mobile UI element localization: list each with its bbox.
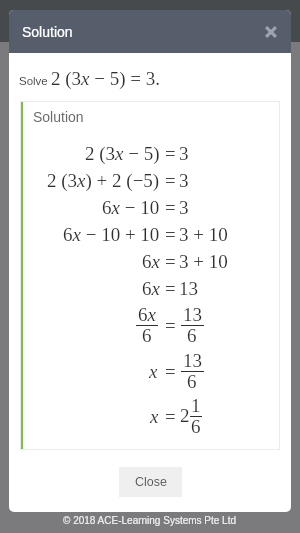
staticText: 3 [179, 197, 189, 218]
staticText: = [165, 315, 176, 336]
staticText: = [165, 197, 176, 218]
staticText: 6 [142, 325, 152, 346]
staticText: 1 [191, 395, 201, 416]
staticText: Solution [33, 109, 84, 125]
staticText: 2 (3x) + 2 (−5) [47, 170, 160, 191]
staticText: 3 + 10 [179, 251, 228, 272]
staticText: = [165, 170, 176, 191]
staticText: 2 [180, 405, 190, 426]
staticText: 13 [183, 350, 202, 371]
staticText: 6 [187, 371, 197, 392]
staticText: Solution [22, 24, 73, 40]
button[interactable]: Close [260, 21, 282, 43]
staticText: x [150, 406, 159, 427]
staticText: 6x − 10 + 10 [63, 224, 160, 245]
staticText: 3 [179, 143, 189, 164]
staticText: = [165, 278, 176, 299]
staticText: Solve 2 (3x − 5) = 3. [19, 68, 160, 89]
staticText: x [149, 361, 158, 382]
staticText: = [165, 361, 176, 382]
button[interactable]: Close [119, 467, 182, 497]
staticText: Close [135, 475, 167, 489]
staticText: 13 [183, 304, 202, 325]
staticText: 6x [142, 278, 160, 299]
staticText: 3 + 10 [179, 224, 228, 245]
staticText: 3 [179, 170, 189, 191]
staticText: = [165, 406, 176, 427]
staticText: 6x [142, 251, 160, 272]
staticText: 13 [179, 278, 198, 299]
staticText: = [165, 251, 176, 272]
staticText: = [165, 224, 176, 245]
staticText: = [165, 143, 176, 164]
staticText: © 2018 ACE-Learning Systems Pte Ltd [63, 515, 237, 526]
staticText: 6x − 10 [102, 197, 160, 218]
staticText: 6x [138, 304, 156, 325]
staticText: 2 (3x − 5) [85, 143, 160, 164]
staticText: 6 [191, 416, 201, 437]
staticText: 6 [187, 325, 197, 346]
